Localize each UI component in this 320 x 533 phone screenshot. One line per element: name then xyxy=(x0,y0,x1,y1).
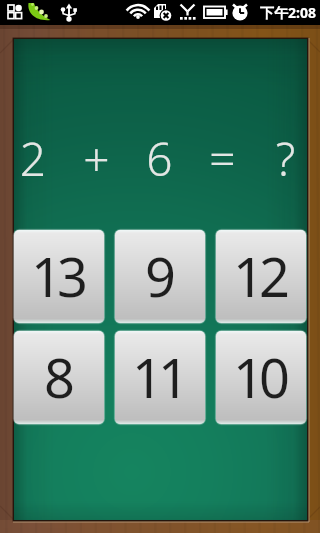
staticText: ? xyxy=(254,127,317,190)
button[interactable]: 11 xyxy=(115,331,205,424)
staticText: = xyxy=(191,127,254,190)
staticText: 10 xyxy=(233,340,286,414)
staticText: 11 xyxy=(132,340,185,414)
button[interactable]: 9 xyxy=(115,230,205,323)
staticText: + xyxy=(65,127,128,190)
staticText: 9 xyxy=(145,239,172,313)
button[interactable]: 10 xyxy=(216,331,306,424)
button[interactable]: 12 xyxy=(216,230,306,323)
staticText: 2 xyxy=(1,127,65,190)
staticText: 6 xyxy=(128,127,191,190)
staticText: 8 xyxy=(44,340,71,414)
staticText: 13 xyxy=(31,239,84,313)
button[interactable]: 13 xyxy=(14,230,104,323)
button[interactable]: 8 xyxy=(14,331,104,424)
staticText: 下午2:08 xyxy=(260,3,316,22)
staticText: 12 xyxy=(233,239,286,313)
